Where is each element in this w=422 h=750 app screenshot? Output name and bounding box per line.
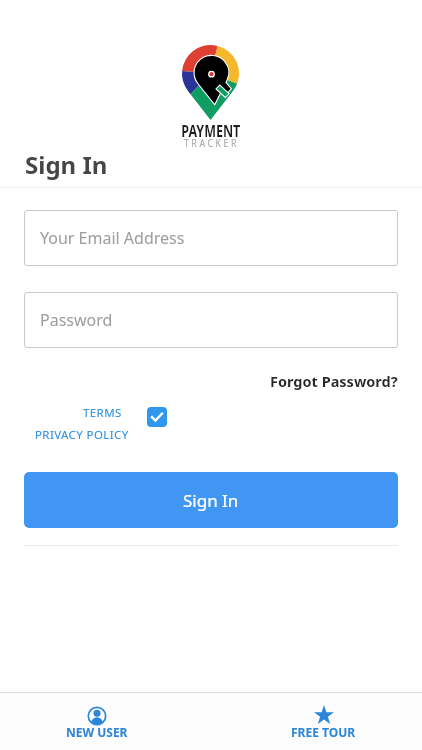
button[interactable]: Forgot Password? [270,371,398,391]
staticText: Your Email Address [40,227,185,249]
button[interactable]: Your Email Address [24,210,398,266]
staticText: TRACKER [184,135,239,150]
button[interactable]: NEW USER [66,704,128,740]
staticText: Password [40,309,113,331]
staticText: Sign In [25,148,108,181]
button[interactable]: Sign In [24,472,398,528]
staticText: PRIVACY POLICY [35,427,129,443]
staticText: Sign In [183,489,239,512]
button[interactable] [147,407,167,427]
staticText: FREE TOUR [291,724,356,740]
staticText: NEW USER [66,724,128,740]
button[interactable]: FREE TOUR [291,704,356,740]
button[interactable]: TERMS [30,405,133,443]
staticText: TERMS [83,405,122,421]
button[interactable]: Password [24,292,398,348]
staticText: PAYMENT [181,120,241,142]
